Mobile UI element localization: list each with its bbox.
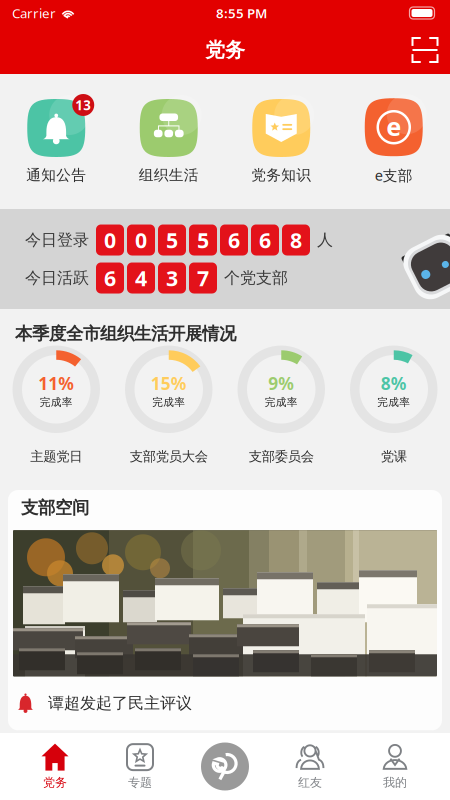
button[interactable]: 13: [0, 99, 112, 184]
staticText: 完成率: [377, 396, 410, 409]
staticText: 本季度全市组织生活开展情况: [15, 323, 236, 344]
staticText: 专题: [128, 775, 152, 790]
staticText: 6: [228, 226, 240, 254]
staticText: 0: [135, 226, 147, 254]
staticText: 完成率: [40, 396, 73, 409]
staticText: 今日活跃: [25, 268, 89, 288]
staticText: 今日登录: [25, 230, 89, 250]
staticText: 9%: [268, 372, 294, 395]
staticText: 完成率: [265, 396, 298, 409]
staticText: 我的: [383, 775, 407, 790]
staticText: 5: [166, 226, 178, 254]
staticText: 4: [135, 264, 147, 292]
button[interactable]: 组织生活: [112, 99, 225, 184]
staticText: 0: [104, 226, 116, 254]
staticText: 主题党日: [30, 448, 82, 465]
staticText: 谭超发起了民主评议: [48, 693, 192, 713]
staticText: 15%: [151, 372, 187, 395]
staticText: 支部委员会: [249, 448, 314, 465]
button[interactable]: 扫一扫: [400, 26, 450, 74]
staticText: 党课: [381, 448, 407, 465]
staticText: 13: [75, 96, 91, 114]
button[interactable]: 谭超发起了民主评议: [8, 676, 442, 730]
staticText: 完成率: [152, 396, 185, 409]
button[interactable]: 我的: [352, 738, 437, 794]
button[interactable]: e: [337, 98, 450, 185]
staticText: 7: [197, 264, 209, 292]
button[interactable]: 党务: [12, 738, 97, 794]
staticText: 8:55 PM: [216, 4, 267, 22]
staticText: 个党支部: [224, 268, 288, 288]
staticText: 党务: [43, 775, 67, 790]
staticText: 8: [290, 226, 302, 254]
staticText: 通知公告: [26, 166, 86, 184]
button[interactable]: 发布: [182, 738, 267, 794]
button[interactable]: 专题: [97, 738, 182, 794]
staticText: 6: [259, 226, 271, 254]
staticText: 红友: [298, 775, 322, 790]
staticText: Carrier: [12, 4, 56, 22]
staticText: 支部党员大会: [130, 448, 208, 465]
staticText: 3: [166, 264, 178, 292]
staticText: 人: [317, 230, 333, 250]
staticText: 组织生活: [139, 166, 199, 184]
staticText: 5: [197, 226, 209, 254]
staticText: e支部: [375, 165, 413, 185]
staticText: e: [386, 109, 401, 143]
button[interactable]: 党务知识: [225, 99, 337, 184]
staticText: 8%: [381, 372, 407, 395]
staticText: 党务: [205, 38, 245, 62]
staticText: 党务知识: [251, 166, 311, 184]
button[interactable]: 红友: [267, 738, 352, 794]
staticText: 11%: [38, 372, 74, 395]
staticText: 支部空间: [21, 497, 89, 518]
staticText: 6: [104, 264, 116, 292]
